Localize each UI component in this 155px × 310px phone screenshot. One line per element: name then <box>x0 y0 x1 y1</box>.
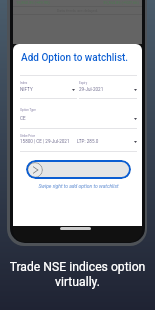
staticText: 29-Jul-2021 <box>79 87 104 92</box>
staticText: LTP: 285.0 <box>77 139 99 144</box>
staticText: 15,860.35 (+89.90) <box>16 0 50 5</box>
staticText: NIFTY <box>20 87 33 92</box>
staticText: Strike Price <box>20 134 36 138</box>
staticText: 35,364.85 (+537.66) <box>103 0 139 5</box>
staticText: CE <box>20 116 26 121</box>
staticText: Index <box>20 81 28 85</box>
staticText: Expiry <box>79 81 88 85</box>
staticText: Trade NSE indices option virtually. <box>0 260 155 289</box>
staticText: Swipe right to add option to watchlist <box>20 183 137 189</box>
button[interactable]: Swipe right to add option to watchlist <box>26 160 131 179</box>
staticText: Option Type <box>20 108 36 112</box>
staticText: 15800 | CE | 29-Jul-2021 <box>20 139 70 144</box>
staticText: Add Option to watchlist. <box>21 52 129 64</box>
